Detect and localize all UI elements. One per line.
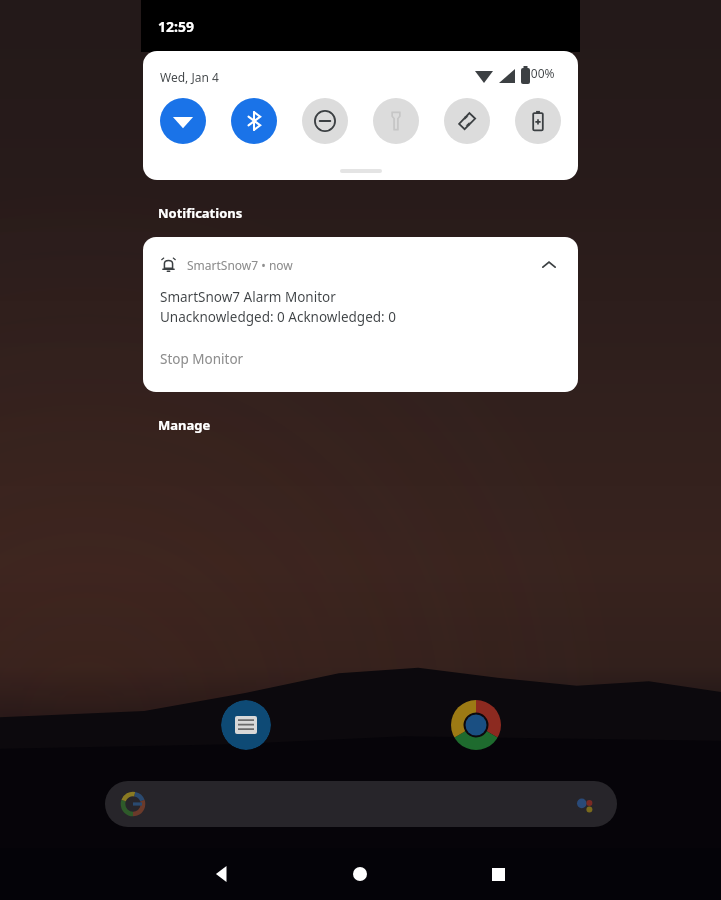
staticText: SmartSnow7 • now — [187, 257, 293, 273]
button[interactable]: Back — [196, 848, 248, 900]
staticText: Stop Monitor — [160, 350, 244, 368]
staticText: 12:59 — [158, 17, 194, 36]
button[interactable]: Auto-rotate — [444, 98, 490, 144]
button[interactable]: Do not disturb — [302, 98, 348, 144]
staticText: Wed, Jan 4 — [160, 69, 219, 85]
button[interactable]: Stop Monitor — [160, 350, 244, 368]
staticText: SmartSnow7 Alarm Monitor — [160, 288, 336, 306]
button[interactable]: Collapse — [529, 245, 569, 285]
button[interactable]: Flashlight — [373, 98, 419, 144]
button[interactable]: Home — [334, 848, 386, 900]
staticText: Unacknowledged: 0 Acknowledged: 0 — [160, 308, 396, 326]
staticText: 100% — [524, 65, 555, 81]
staticText: Notifications — [158, 204, 243, 222]
button[interactable]: Messages — [221, 700, 271, 750]
button[interactable]: Battery Saver — [515, 98, 561, 144]
staticText: Manage — [158, 416, 211, 434]
button[interactable]: Bluetooth — [231, 98, 277, 144]
button[interactable]: Notifications — [158, 204, 243, 222]
button[interactable]: SmartSnow7 • now — [143, 237, 578, 392]
button[interactable]: Search — [105, 781, 617, 827]
button[interactable]: Wi-Fi — [160, 98, 206, 144]
button[interactable]: Manage — [158, 416, 211, 434]
button[interactable]: Chrome — [451, 700, 501, 750]
button[interactable]: Recents — [472, 848, 524, 900]
